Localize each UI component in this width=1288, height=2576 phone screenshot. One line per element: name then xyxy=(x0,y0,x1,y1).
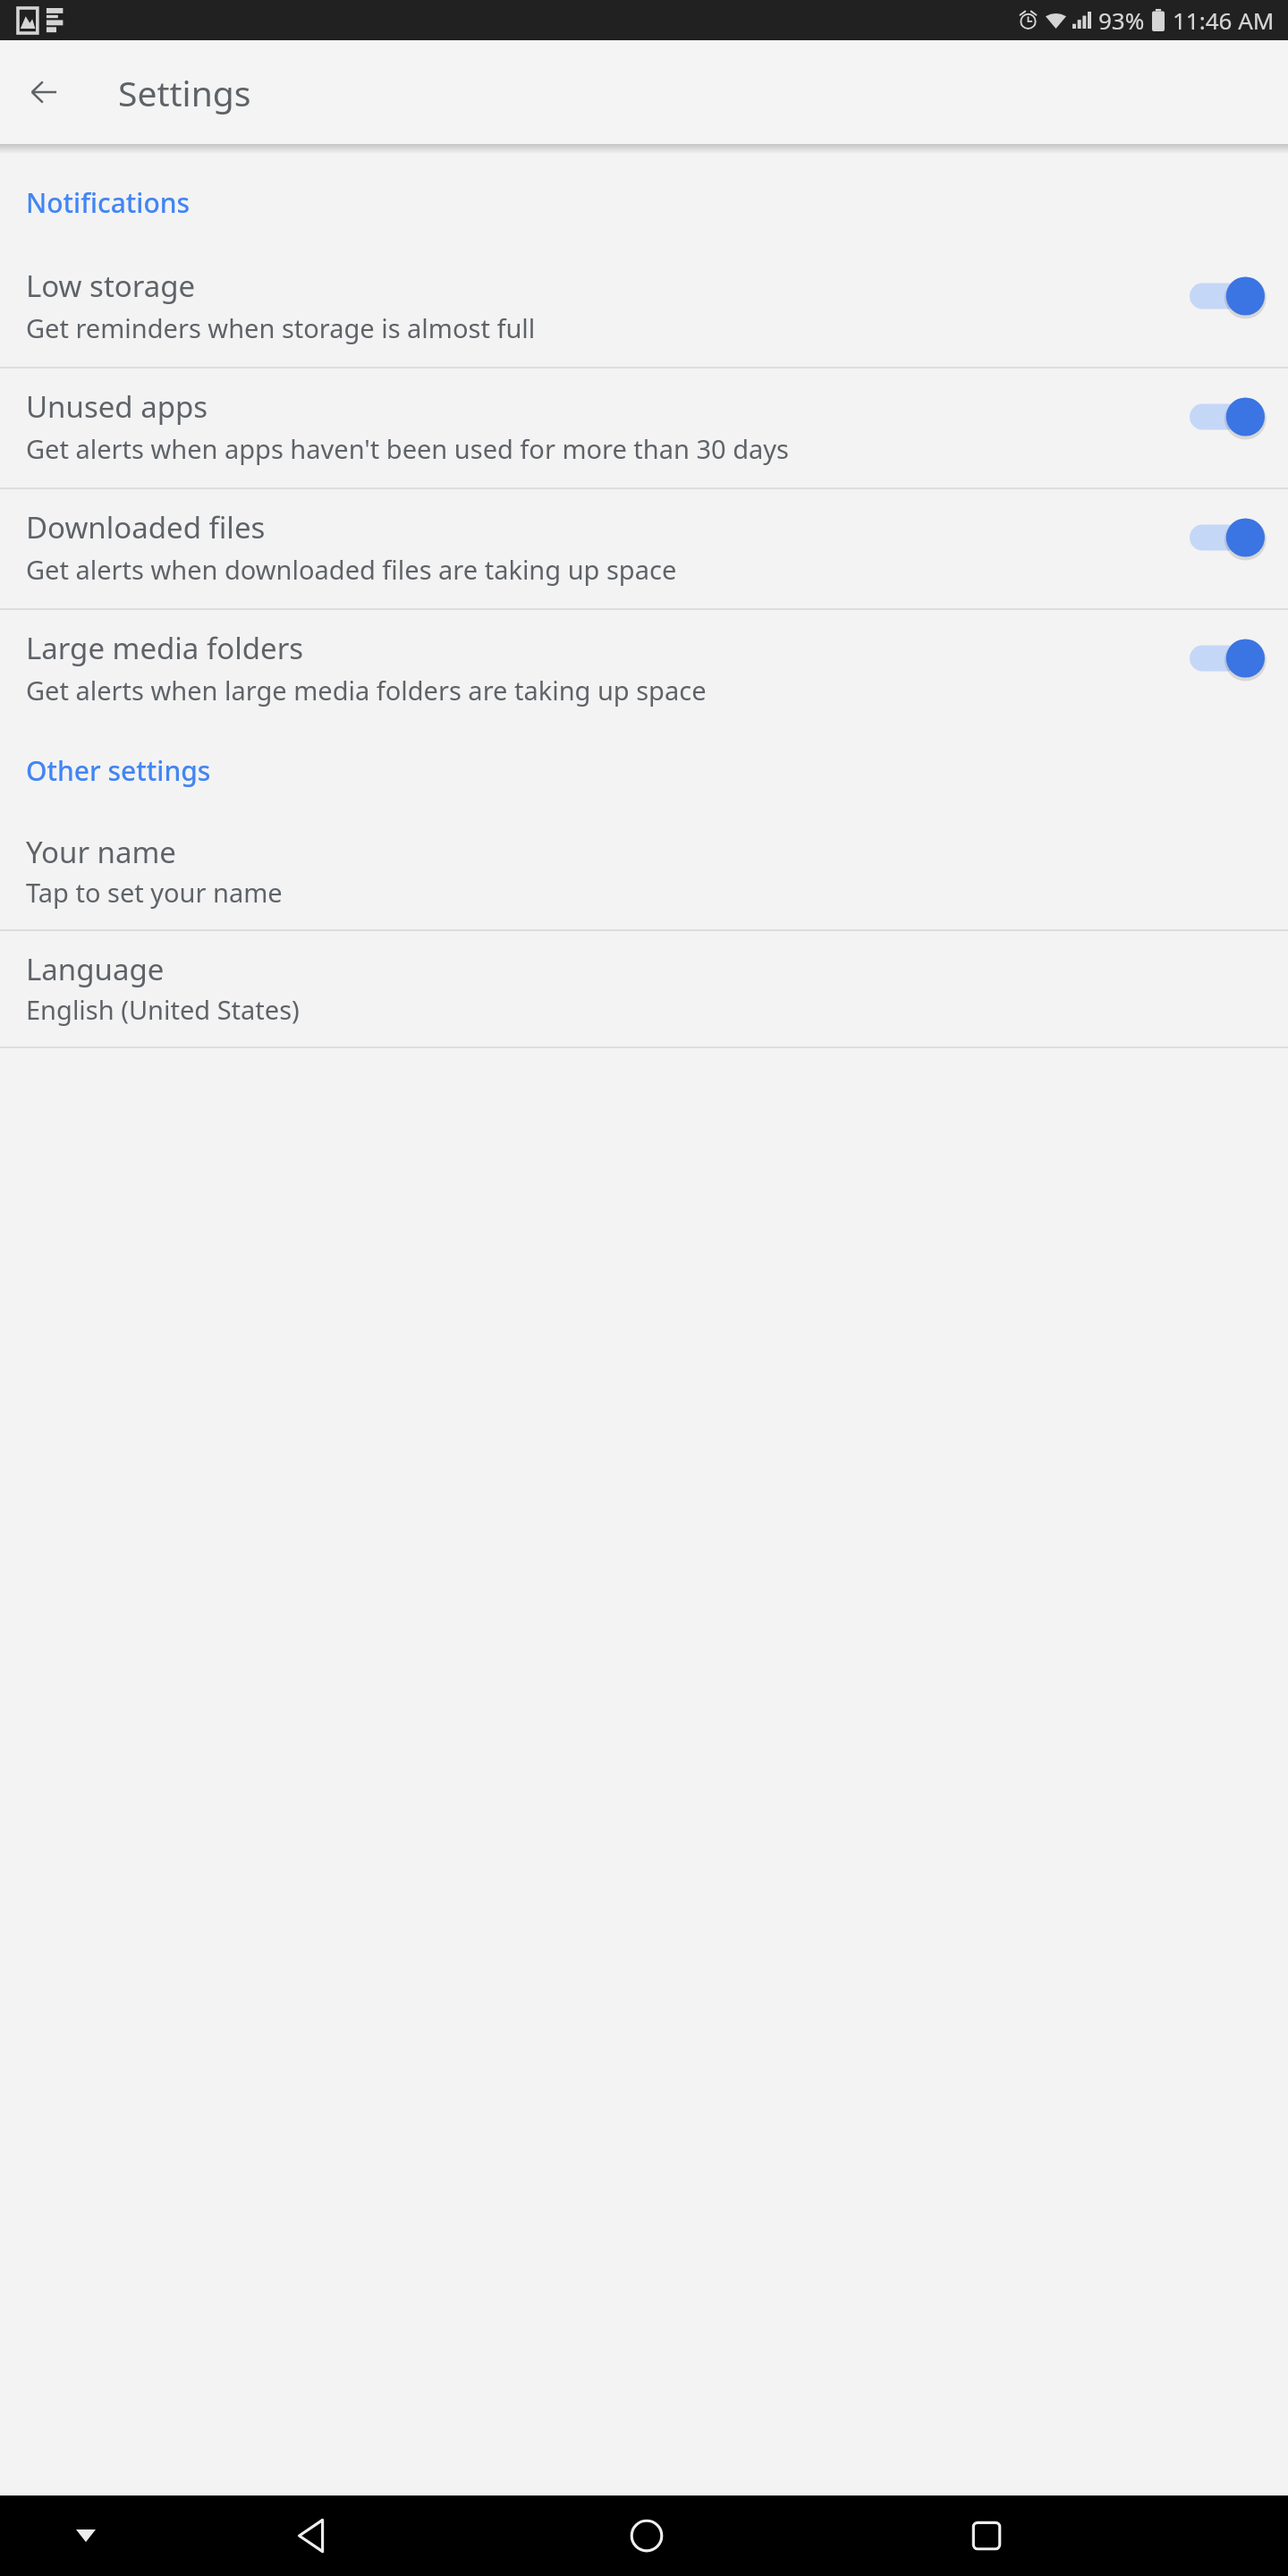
staticText: Get alerts when downloaded files are tak… xyxy=(26,552,677,587)
staticText: 11:46 AM xyxy=(1173,4,1275,36)
staticText: Your name xyxy=(26,832,176,872)
staticText: Language xyxy=(26,949,165,989)
button[interactable]: Toggle Low storage xyxy=(1190,275,1265,318)
staticText: Notifications xyxy=(26,184,1288,221)
staticText: Settings xyxy=(118,69,251,116)
staticText: Unused apps xyxy=(26,386,208,427)
button[interactable]: Back xyxy=(19,67,69,117)
button[interactable]: Low storage xyxy=(0,248,1288,367)
button[interactable]: Hide keyboard xyxy=(61,2511,111,2561)
button[interactable]: Toggle Downloaded files xyxy=(1190,516,1265,559)
button[interactable]: Recents xyxy=(962,2511,1012,2561)
button[interactable]: Downloaded files xyxy=(0,489,1288,608)
staticText: Large media folders xyxy=(26,628,304,668)
staticText: 93% xyxy=(1098,4,1145,36)
button[interactable]: Language xyxy=(0,931,1288,1046)
button[interactable]: Unused apps xyxy=(0,369,1288,487)
button[interactable]: Toggle Unused apps xyxy=(1190,395,1265,438)
staticText: Downloaded files xyxy=(26,507,266,547)
button[interactable]: Large media folders xyxy=(0,610,1288,729)
button[interactable]: Your name xyxy=(0,814,1288,929)
staticText: Other settings xyxy=(26,752,1288,789)
staticText: Tap to set your name xyxy=(26,875,283,910)
staticText: Get reminders when storage is almost ful… xyxy=(26,310,536,345)
staticText: Low storage xyxy=(26,266,196,306)
button[interactable]: Toggle Large media folders xyxy=(1190,637,1265,680)
staticText: Get alerts when large media folders are … xyxy=(26,673,707,708)
staticText: Get alerts when apps haven't been used f… xyxy=(26,431,789,466)
button[interactable]: Back xyxy=(286,2511,336,2561)
staticText: English (United States) xyxy=(26,992,300,1027)
button[interactable]: Home xyxy=(622,2511,672,2561)
